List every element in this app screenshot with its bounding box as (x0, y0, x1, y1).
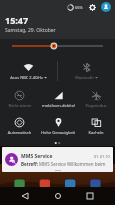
button[interactable]: MMS Service (2, 147, 113, 172)
staticText: Asus NBC 2.4GHz (10, 75, 43, 80)
button[interactable]: Bluetooth (58, 56, 115, 85)
staticText: 66% (75, 5, 83, 10)
staticText: Hohe Genauigkeit (41, 130, 75, 135)
button[interactable]: mobilcom-debitel (39, 85, 77, 112)
staticText: 15:47 (5, 14, 29, 26)
staticText: Samstag, 29. Oktober (5, 27, 56, 34)
staticText: MMS Service Willkommen beim M... (39, 161, 110, 167)
staticText: MMS Service (21, 153, 53, 160)
staticText: mobilcom-debitel (42, 103, 75, 108)
staticText: 01.01.10 (94, 154, 110, 159)
button[interactable]: Flugmodus (77, 85, 115, 112)
button[interactable]: Hohe Genauigkeit (39, 112, 77, 139)
staticText: Nicht stören (8, 103, 32, 108)
staticText: Betreff: (21, 161, 38, 167)
button[interactable]: Übersicht (82, 188, 98, 204)
button[interactable]: Nicht stören (0, 85, 39, 112)
staticText: Automatisch drehen (1, 130, 38, 135)
button[interactable]: Zurück (17, 188, 33, 204)
button[interactable]: Kacheln bearbeiten (77, 112, 115, 139)
button[interactable]: Einstellungen (88, 3, 97, 12)
staticText: Flugmodus (85, 103, 107, 108)
staticText: Kacheln bearbeiten (78, 130, 114, 135)
button[interactable]: Asus NBC 2.4GHz (0, 56, 57, 85)
staticText: Bluetooth (75, 75, 94, 80)
button[interactable]: Startbildschirm (50, 188, 66, 204)
button[interactable]: Automatisch drehen (0, 112, 39, 139)
button[interactable]: Helligkeit (0, 39, 115, 53)
button[interactable]: Nutzer (101, 2, 111, 12)
